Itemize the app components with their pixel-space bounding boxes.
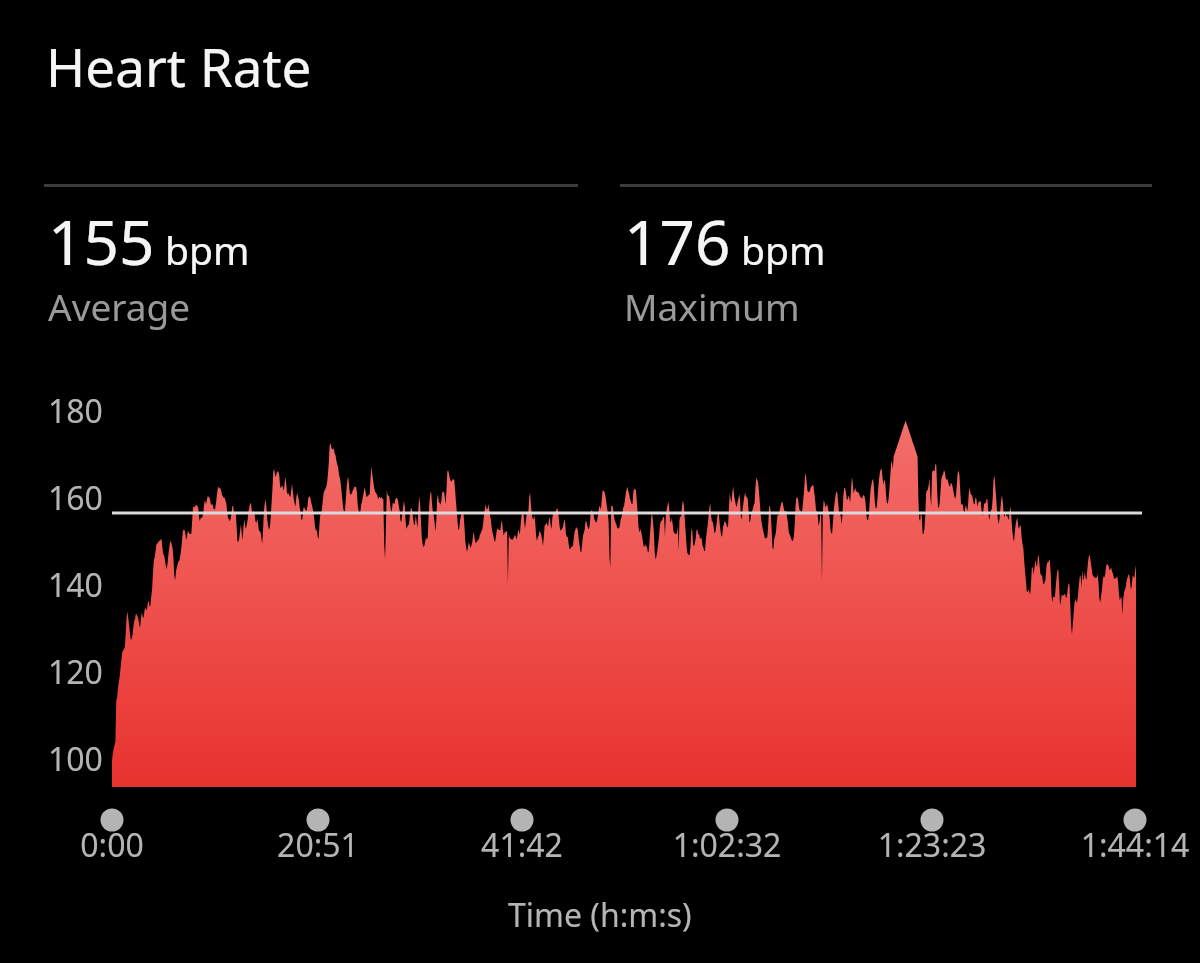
staticText: 0:00 [17,823,207,867]
staticText: 1:23:23 [837,823,1027,867]
staticText: 155 [48,199,155,283]
staticText: 1:44:14 [1040,823,1200,867]
staticText: 20:51 [223,823,413,867]
staticText: 1:02:32 [632,823,822,867]
staticText: 100 [48,737,103,781]
staticText: Maximum [624,281,800,331]
staticText: bpm [741,223,826,276]
button[interactable]: Heart rate chart [0,386,1200,886]
staticText: Average [48,281,191,331]
staticText: 140 [48,563,103,607]
staticText: Heart Rate [46,30,312,102]
staticText: bpm [165,223,250,276]
staticText: 120 [48,650,103,694]
staticText: 41:42 [427,823,617,867]
staticText: 176 [624,199,731,283]
staticText: 160 [48,476,103,520]
staticText: 180 [48,389,103,433]
staticText: Time (h:m:s) [508,893,692,937]
